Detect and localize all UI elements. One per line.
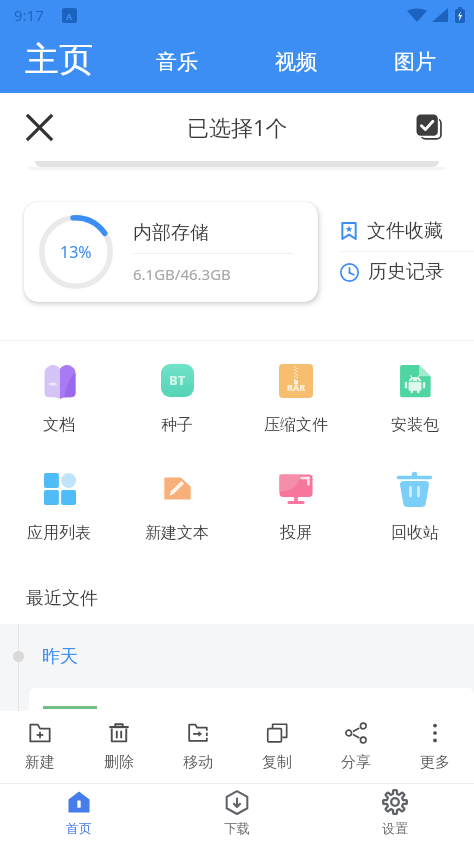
staticText: BT <box>169 371 186 389</box>
staticText: 13% <box>60 241 92 263</box>
staticText: 最近文件 <box>26 587 98 610</box>
button[interactable]: 设置 <box>316 784 474 842</box>
staticText: 音乐 <box>156 49 198 75</box>
staticText: 回收站 <box>391 523 439 543</box>
button[interactable]: 新建 <box>0 711 79 783</box>
staticText: 投屏 <box>280 523 312 543</box>
staticText: 移动 <box>183 753 213 772</box>
button[interactable]: 新建文本 <box>118 470 236 543</box>
button[interactable]: 更多 <box>395 711 474 783</box>
button[interactable]: Close selection <box>16 104 62 150</box>
button[interactable]: 回收站 <box>355 470 474 543</box>
staticText: A <box>66 10 73 22</box>
staticText: 图片 <box>394 49 436 75</box>
button[interactable]: 首页 <box>0 784 158 842</box>
staticText: 应用列表 <box>27 523 91 543</box>
button[interactable]: 投屏 <box>236 470 355 543</box>
button[interactable]: 复制 <box>237 711 316 783</box>
button[interactable]: 音乐 <box>118 30 236 89</box>
button[interactable]: 移动 <box>158 711 237 783</box>
staticText: 删除 <box>104 753 134 772</box>
staticText: 6.1GB/46.3GB <box>133 264 231 284</box>
button[interactable]: 删除 <box>79 711 158 783</box>
staticText: 昨天 <box>42 645 78 668</box>
button[interactable]: 文档 <box>0 362 118 435</box>
button[interactable]: 视频 <box>236 30 355 89</box>
button[interactable]: 文件收藏 <box>340 211 474 251</box>
staticText: 设置 <box>382 820 408 836</box>
button[interactable]: 13% <box>24 202 318 302</box>
button[interactable]: 下载 <box>158 784 316 842</box>
staticText: 种子 <box>161 415 193 435</box>
button[interactable]: Select all <box>406 104 452 150</box>
button[interactable]: 安装包 <box>355 362 474 435</box>
staticText: 分享 <box>341 753 371 772</box>
button[interactable]: 图片 <box>355 30 474 89</box>
staticText: 压缩文件 <box>264 415 328 435</box>
staticText: 9:17 <box>14 5 44 25</box>
staticText: RAR <box>287 381 306 393</box>
button[interactable]: 主页 <box>0 30 118 89</box>
staticText: 新建 <box>25 753 55 772</box>
staticText: 更多 <box>420 753 450 772</box>
staticText: 安装包 <box>391 415 439 435</box>
staticText: 内部存储 <box>133 221 209 245</box>
staticText: 主页 <box>25 38 93 81</box>
button[interactable]: 历史记录 <box>340 252 474 292</box>
staticText: 文件收藏 <box>367 219 443 243</box>
button[interactable]: 应用列表 <box>0 470 118 543</box>
button[interactable]: 分享 <box>316 711 395 783</box>
button[interactable]: BT <box>118 362 236 435</box>
staticText: 历史记录 <box>368 260 444 284</box>
staticText: 视频 <box>275 49 317 75</box>
staticText: 新建文本 <box>145 523 209 543</box>
staticText: 复制 <box>262 753 292 772</box>
staticText: 文档 <box>43 415 75 435</box>
staticText: 下载 <box>224 820 250 836</box>
staticText: 已选择1个 <box>187 112 288 142</box>
staticText: 首页 <box>66 820 92 836</box>
button[interactable]: RAR <box>236 362 355 435</box>
